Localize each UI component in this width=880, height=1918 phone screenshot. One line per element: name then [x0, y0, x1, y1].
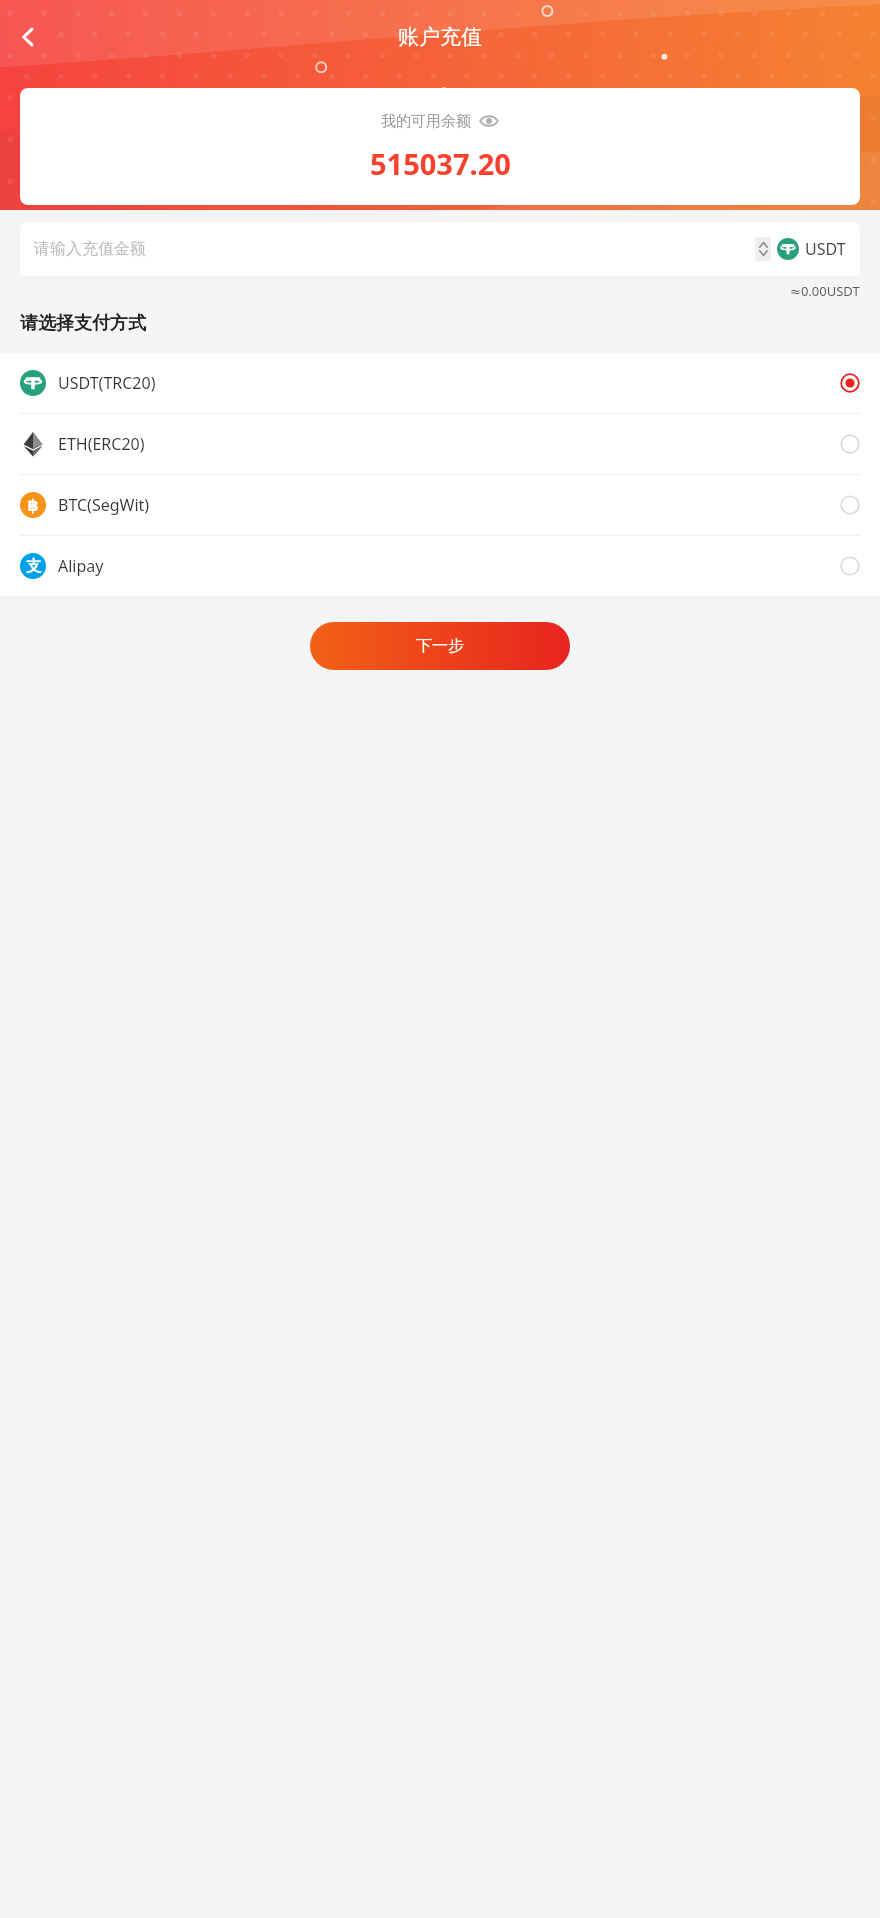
button[interactable]: Change currency	[755, 237, 771, 261]
staticText: USDT	[805, 238, 846, 260]
staticText: 请输入充值金额	[34, 239, 755, 259]
button[interactable]: 支	[0, 536, 880, 596]
staticText: 我的可用余额	[381, 112, 471, 131]
button[interactable]: 请输入充值金额	[20, 222, 860, 276]
staticText: ETH(ERC20)	[58, 433, 840, 455]
staticText: 账户充值	[398, 24, 482, 50]
staticText: 下一步	[416, 636, 464, 656]
button[interactable]: ฿	[0, 475, 880, 536]
staticText: USDT(TRC20)	[58, 372, 840, 394]
button[interactable]: ETH(ERC20)	[0, 414, 880, 475]
staticText: ฿	[27, 496, 39, 515]
staticText: Alipay	[58, 555, 840, 577]
button[interactable]: USDT(TRC20)	[0, 353, 880, 414]
button[interactable]: Back	[4, 13, 52, 61]
staticText: BTC(SegWit)	[58, 494, 840, 516]
button[interactable]: 下一步	[310, 622, 570, 670]
staticText: 515037.20	[370, 144, 511, 183]
staticText: 请选择支付方式	[20, 312, 146, 335]
button[interactable]: Toggle balance visibility	[478, 110, 500, 132]
staticText: ≈0.00USDT	[790, 282, 860, 300]
staticText: 支	[26, 557, 41, 576]
